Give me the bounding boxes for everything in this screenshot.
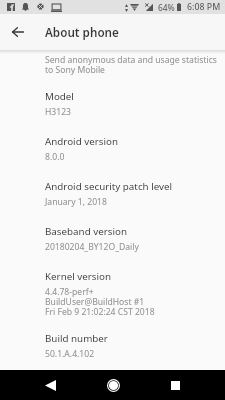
staticText: Android version [45,135,118,148]
button[interactable]: Back [33,370,67,400]
button[interactable]: Baseband version [0,225,225,253]
staticText: 4.4.78-perf+ BuildUser@BuildHost #1 Fri … [45,286,155,317]
staticText: Baseband version [45,225,127,238]
button[interactable]: Kernel version [0,270,225,317]
button[interactable]: Home [96,370,130,400]
staticText: 64% [158,2,175,13]
button[interactable]: Android security patch level [0,180,225,208]
button[interactable]: Build number [0,332,225,360]
staticText: Android security patch level [45,180,173,193]
staticText: 6:08 PM [187,1,221,13]
staticText: Model [45,90,74,103]
staticText: About phone [45,24,119,40]
staticText: 8.0.0 [45,151,65,163]
button[interactable]: Android version [0,135,225,163]
button[interactable]: Recent apps [158,370,192,400]
button[interactable]: Model [0,90,225,118]
button[interactable]: Navigate up [0,14,36,50]
staticText: January 1, 2018 [45,196,107,208]
staticText: 50.1.A.4.102 [45,348,95,360]
staticText: 20180204_BY12O_Daily [45,241,139,253]
staticText: Send anonymous data and usage statistics… [45,54,217,75]
staticText: H3123 [45,106,72,118]
staticText: Build number [45,332,108,345]
staticText: Kernel version [45,270,112,283]
